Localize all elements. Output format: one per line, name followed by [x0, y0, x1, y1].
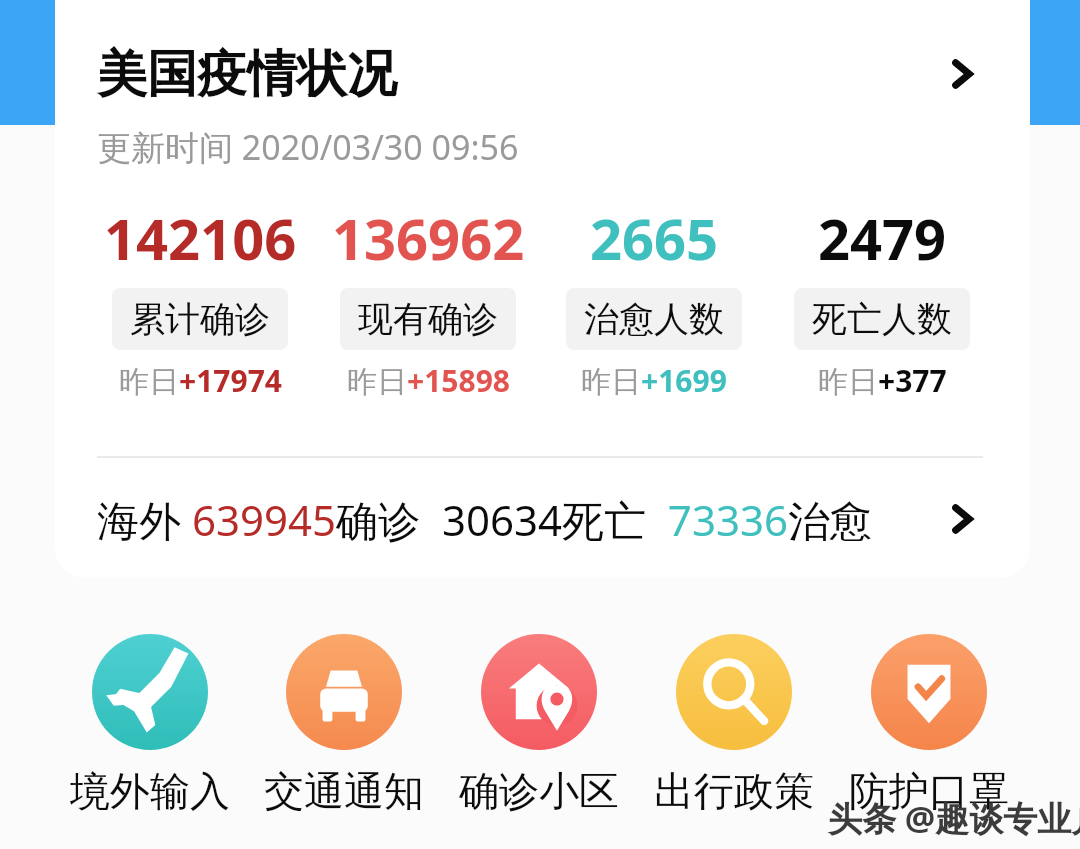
- button[interactable]: 142106: [86, 200, 314, 400]
- staticText: 海外 639945确诊 30634死亡 73336治愈: [97, 491, 872, 548]
- staticText: 确诊小区: [459, 766, 619, 816]
- button[interactable]: 出行政策: [624, 634, 844, 834]
- button[interactable]: 海外 639945确诊 30634死亡 73336治愈: [55, 478, 1030, 560]
- staticText: 出行政策: [654, 766, 814, 816]
- button[interactable]: 2665: [540, 200, 768, 400]
- staticText: 头条 @趣谈专业户: [828, 795, 1080, 841]
- staticText: 2479: [818, 200, 947, 274]
- other: View details: [942, 54, 982, 94]
- staticText: 昨日+17974: [119, 360, 282, 401]
- button[interactable]: 2479: [768, 200, 996, 400]
- staticText: 2665: [590, 200, 719, 274]
- staticText: 治愈人数: [584, 297, 724, 341]
- staticText: 交通通知: [264, 766, 424, 816]
- staticText: 现有确诊: [358, 297, 498, 341]
- staticText: 昨日+1699: [581, 360, 727, 401]
- button[interactable]: 美国疫情状况: [55, 26, 1030, 122]
- other: Overseas details: [942, 499, 982, 539]
- staticText: 136962: [332, 200, 525, 274]
- button[interactable]: 136962: [314, 200, 542, 400]
- staticText: 累计确诊: [130, 297, 270, 341]
- button[interactable]: 确诊小区: [429, 634, 649, 834]
- staticText: 142106: [104, 200, 297, 274]
- staticText: 更新时间 2020/03/30 09:56: [97, 124, 519, 170]
- button[interactable]: 交通通知: [234, 634, 454, 834]
- button[interactable]: [55, 0, 1030, 578]
- button[interactable]: 防护口罩: [819, 634, 1039, 834]
- staticText: 死亡人数: [812, 297, 952, 341]
- staticText: 防护口罩: [849, 766, 1009, 816]
- staticText: 昨日+15898: [347, 360, 510, 401]
- staticText: 昨日+377: [818, 360, 947, 401]
- staticText: 美国疫情状况: [97, 43, 397, 106]
- staticText: 境外输入: [70, 766, 230, 816]
- button[interactable]: 境外输入: [40, 634, 260, 834]
